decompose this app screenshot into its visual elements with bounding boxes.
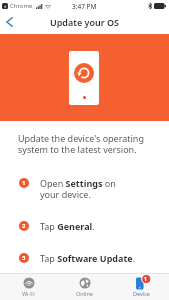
- staticText: Open Settings on your device.: [40, 177, 160, 201]
- staticText: 3: [22, 254, 26, 262]
- staticText: Update your OS: [50, 16, 120, 28]
- staticText: Wi-Fi: [22, 290, 35, 297]
- staticText: 1: [144, 276, 147, 283]
- staticText: 2: [22, 222, 26, 230]
- button[interactable]: Online: [57, 273, 113, 300]
- staticText: Update the device's operating system to …: [18, 132, 146, 156]
- staticText: 1: [22, 179, 26, 187]
- staticText: Online: [76, 290, 94, 297]
- button[interactable]: Wi-Fi: [0, 273, 57, 300]
- staticText: Tap Software Update.: [40, 252, 160, 264]
- staticText: 3:47 PM: [72, 2, 97, 11]
- staticText: Device: [133, 290, 150, 297]
- staticText: <: [4, 4, 7, 9]
- button[interactable]: 1: [113, 273, 169, 300]
- staticText: Chrome: [10, 2, 33, 10]
- button[interactable]: Back: [1, 13, 18, 30]
- staticText: Tap General.: [40, 220, 160, 232]
